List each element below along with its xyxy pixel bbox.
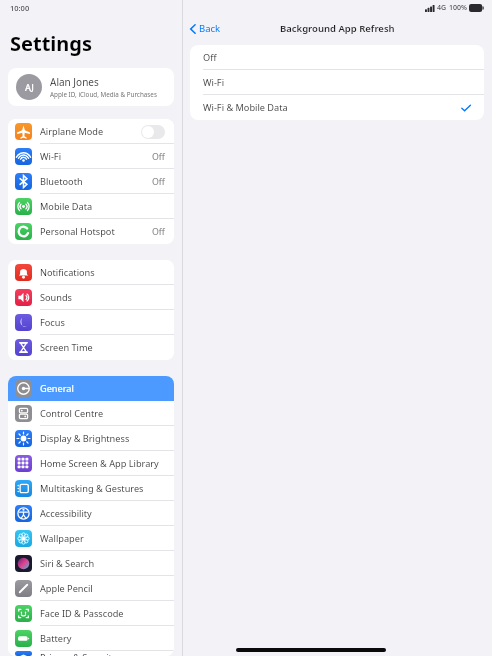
- button[interactable]: AJ: [8, 68, 174, 106]
- staticText: Wi-Fi: [203, 76, 225, 89]
- button[interactable]: Privacy & Security: [8, 651, 174, 656]
- button[interactable]: Airplane Mode: [8, 119, 174, 144]
- button[interactable]: General: [8, 376, 174, 401]
- button[interactable]: Back: [187, 19, 224, 38]
- staticText: Personal Hotspot: [40, 225, 115, 238]
- button[interactable]: Accessibility: [8, 501, 174, 526]
- staticText: Wi-Fi & Mobile Data: [203, 101, 288, 114]
- button[interactable]: Multitasking & Gestures: [8, 476, 174, 501]
- button[interactable]: Mobile Data: [8, 194, 174, 219]
- staticText: Multitasking & Gestures: [40, 482, 144, 495]
- staticText: Alan Jones: [50, 75, 99, 89]
- button[interactable]: Wi-Fi & Mobile Data: [190, 95, 484, 120]
- button[interactable]: Home Screen & App Library: [8, 451, 174, 476]
- staticText: Background App Refresh: [280, 22, 395, 35]
- staticText: 10:00: [10, 3, 30, 13]
- button[interactable]: Apple Pencil: [8, 576, 174, 601]
- button[interactable]: Bluetooth: [8, 169, 174, 194]
- button[interactable]: Face ID & Passcode: [8, 601, 174, 626]
- staticText: Display & Brightness: [40, 432, 130, 445]
- button[interactable]: Siri & Search: [8, 551, 174, 576]
- staticText: Wallpaper: [40, 532, 84, 545]
- staticText: Mobile Data: [40, 200, 93, 213]
- button[interactable]: Wi-Fi: [8, 144, 174, 169]
- staticText: Off: [152, 176, 165, 188]
- button[interactable]: Wallpaper: [8, 526, 174, 551]
- button[interactable]: Display & Brightness: [8, 426, 174, 451]
- button[interactable]: Airplane Mode toggle: [141, 125, 165, 139]
- staticText: 4G: [437, 3, 447, 13]
- button[interactable]: Control Centre: [8, 401, 174, 426]
- staticText: Wi-Fi: [40, 150, 62, 163]
- staticText: Siri & Search: [40, 557, 95, 570]
- staticText: Notifications: [40, 266, 95, 279]
- staticText: Control Centre: [40, 407, 104, 420]
- staticText: Battery: [40, 632, 72, 645]
- staticText: Apple ID, iCloud, Media & Purchases: [50, 90, 157, 99]
- button[interactable]: Battery: [8, 626, 174, 651]
- staticText: Face ID & Passcode: [40, 607, 124, 620]
- staticText: Off: [152, 151, 165, 163]
- button[interactable]: Off: [190, 45, 484, 70]
- staticText: Settings: [10, 30, 92, 57]
- staticText: Bluetooth: [40, 175, 83, 188]
- staticText: Accessibility: [40, 507, 92, 520]
- staticText: Airplane Mode: [40, 125, 104, 138]
- staticText: Screen Time: [40, 341, 93, 354]
- staticText: General: [40, 382, 74, 395]
- staticText: Apple Pencil: [40, 582, 93, 595]
- staticText: Home Screen & App Library: [40, 457, 159, 470]
- staticText: Sounds: [40, 291, 73, 304]
- staticText: Off: [152, 226, 165, 238]
- button[interactable]: Personal Hotspot: [8, 219, 174, 244]
- staticText: Focus: [40, 316, 65, 329]
- button[interactable]: Focus: [8, 310, 174, 335]
- staticText: Back: [199, 22, 221, 35]
- staticText: Off: [203, 51, 217, 64]
- button[interactable]: Notifications: [8, 260, 174, 285]
- button[interactable]: Wi-Fi: [190, 70, 484, 95]
- button[interactable]: Screen Time: [8, 335, 174, 360]
- staticText: 100%: [449, 3, 467, 13]
- staticText: Privacy & Security: [40, 651, 117, 656]
- button[interactable]: Sounds: [8, 285, 174, 310]
- staticText: AJ: [25, 81, 34, 93]
